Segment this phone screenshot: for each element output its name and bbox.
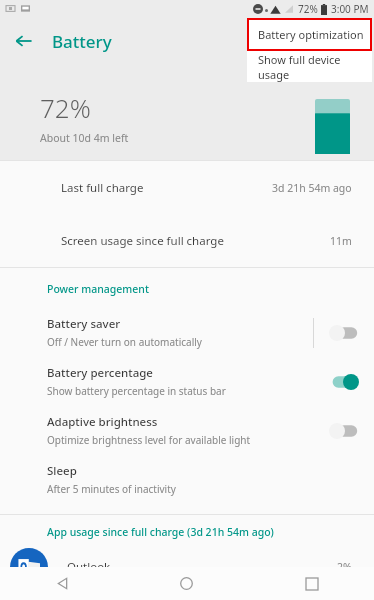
staticText: Last full charge bbox=[61, 180, 272, 196]
button[interactable]: Back bbox=[0, 567, 124, 600]
staticText: Battery saver bbox=[47, 316, 121, 332]
staticText: Battery bbox=[52, 30, 112, 53]
button[interactable]: Show full device usage bbox=[247, 51, 372, 82]
staticText: Show full device usage bbox=[258, 52, 372, 82]
button[interactable]: Adaptive brightness bbox=[314, 406, 374, 455]
button[interactable]: Home bbox=[124, 567, 249, 600]
button[interactable]: Battery percentage bbox=[0, 357, 374, 406]
button[interactable]: Recent apps bbox=[249, 567, 374, 600]
staticText: Screen usage since full charge bbox=[61, 233, 330, 249]
staticText: 72% bbox=[298, 2, 318, 16]
staticText: About 10d 4m left bbox=[40, 131, 129, 145]
staticText: 3d 21h 54m ago bbox=[272, 181, 352, 195]
staticText: 2% bbox=[337, 560, 352, 574]
staticText: 72% bbox=[40, 90, 91, 125]
button[interactable]: Screen usage since full charge bbox=[0, 214, 374, 267]
staticText: Optimize brightness level for available … bbox=[47, 433, 251, 447]
staticText: 11m bbox=[330, 234, 352, 248]
staticText: Power management bbox=[47, 282, 149, 296]
button[interactable]: Battery percentage bbox=[314, 357, 374, 406]
staticText: Adaptive brightness bbox=[47, 414, 158, 430]
button[interactable]: Outlook bbox=[0, 545, 374, 589]
staticText: Battery percentage bbox=[47, 365, 153, 381]
staticText: App usage since full charge (3d 21h 54m … bbox=[47, 525, 274, 539]
staticText: Battery optimization bbox=[258, 27, 364, 42]
button[interactable]: Back bbox=[0, 17, 48, 65]
button[interactable]: Battery saver bbox=[0, 308, 374, 357]
staticText: Off / Never turn on automatically bbox=[47, 335, 202, 349]
staticText: After 5 minutes of inactivity bbox=[47, 482, 176, 496]
staticText: Show battery percentage in status bar bbox=[47, 384, 226, 398]
staticText: 3:00 PM bbox=[331, 2, 369, 16]
staticText: Outlook bbox=[67, 559, 337, 575]
button[interactable]: Last full charge bbox=[0, 161, 374, 214]
button[interactable]: Sleep bbox=[0, 455, 374, 504]
staticText: Sleep bbox=[47, 463, 77, 479]
button[interactable]: Battery optimization bbox=[247, 18, 372, 51]
button[interactable]: Adaptive brightness bbox=[0, 406, 374, 455]
button[interactable]: Battery saver bbox=[314, 308, 374, 357]
